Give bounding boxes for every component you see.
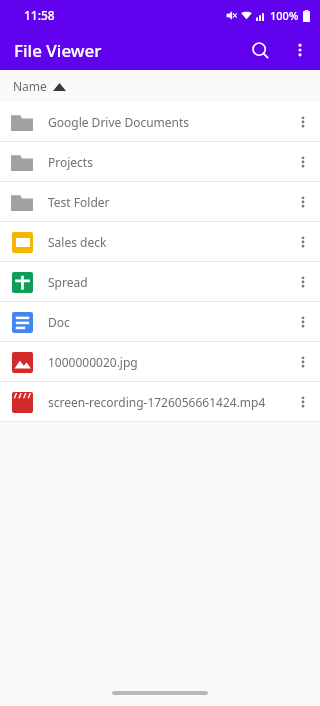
staticText: 1000000020.jpg [48, 354, 286, 370]
button[interactable]: Projects [0, 142, 320, 181]
button[interactable]: More options for screen-recording-172605… [286, 382, 320, 421]
staticText: 100% [270, 8, 299, 23]
staticText: Test Folder [48, 194, 286, 210]
button[interactable]: More options for Doc [286, 302, 320, 341]
button[interactable]: More options for Projects [286, 142, 320, 181]
button[interactable]: More options for Sales deck [286, 222, 320, 261]
staticText: Projects [48, 154, 286, 170]
button[interactable]: screen-recording-1726056661424.mp4 [0, 382, 320, 421]
button[interactable]: More options [280, 30, 320, 70]
button[interactable]: Doc [0, 302, 320, 341]
button[interactable]: Google Drive Documents [0, 102, 320, 141]
staticText: Google Drive Documents [48, 114, 286, 130]
staticText: Doc [48, 314, 286, 330]
button[interactable]: More options for Spread [286, 262, 320, 301]
staticText: Sales deck [48, 234, 286, 250]
button[interactable]: Test Folder [0, 182, 320, 221]
button[interactable]: Sales deck [0, 222, 320, 261]
button[interactable]: More options for Google Drive Documents [286, 102, 320, 141]
button[interactable]: Spread [0, 262, 320, 301]
staticText: Name [13, 78, 47, 94]
button[interactable]: More options for 1000000020.jpg [286, 342, 320, 381]
staticText: 11:58 [24, 7, 55, 23]
button[interactable]: More options for Test Folder [286, 182, 320, 221]
staticText: Spread [48, 274, 286, 290]
button[interactable]: Search [240, 30, 280, 70]
staticText: screen-recording-1726056661424.mp4 [48, 394, 286, 410]
staticText: File Viewer [14, 39, 102, 62]
button[interactable]: Name [0, 70, 320, 102]
button[interactable]: 1000000020.jpg [0, 342, 320, 381]
